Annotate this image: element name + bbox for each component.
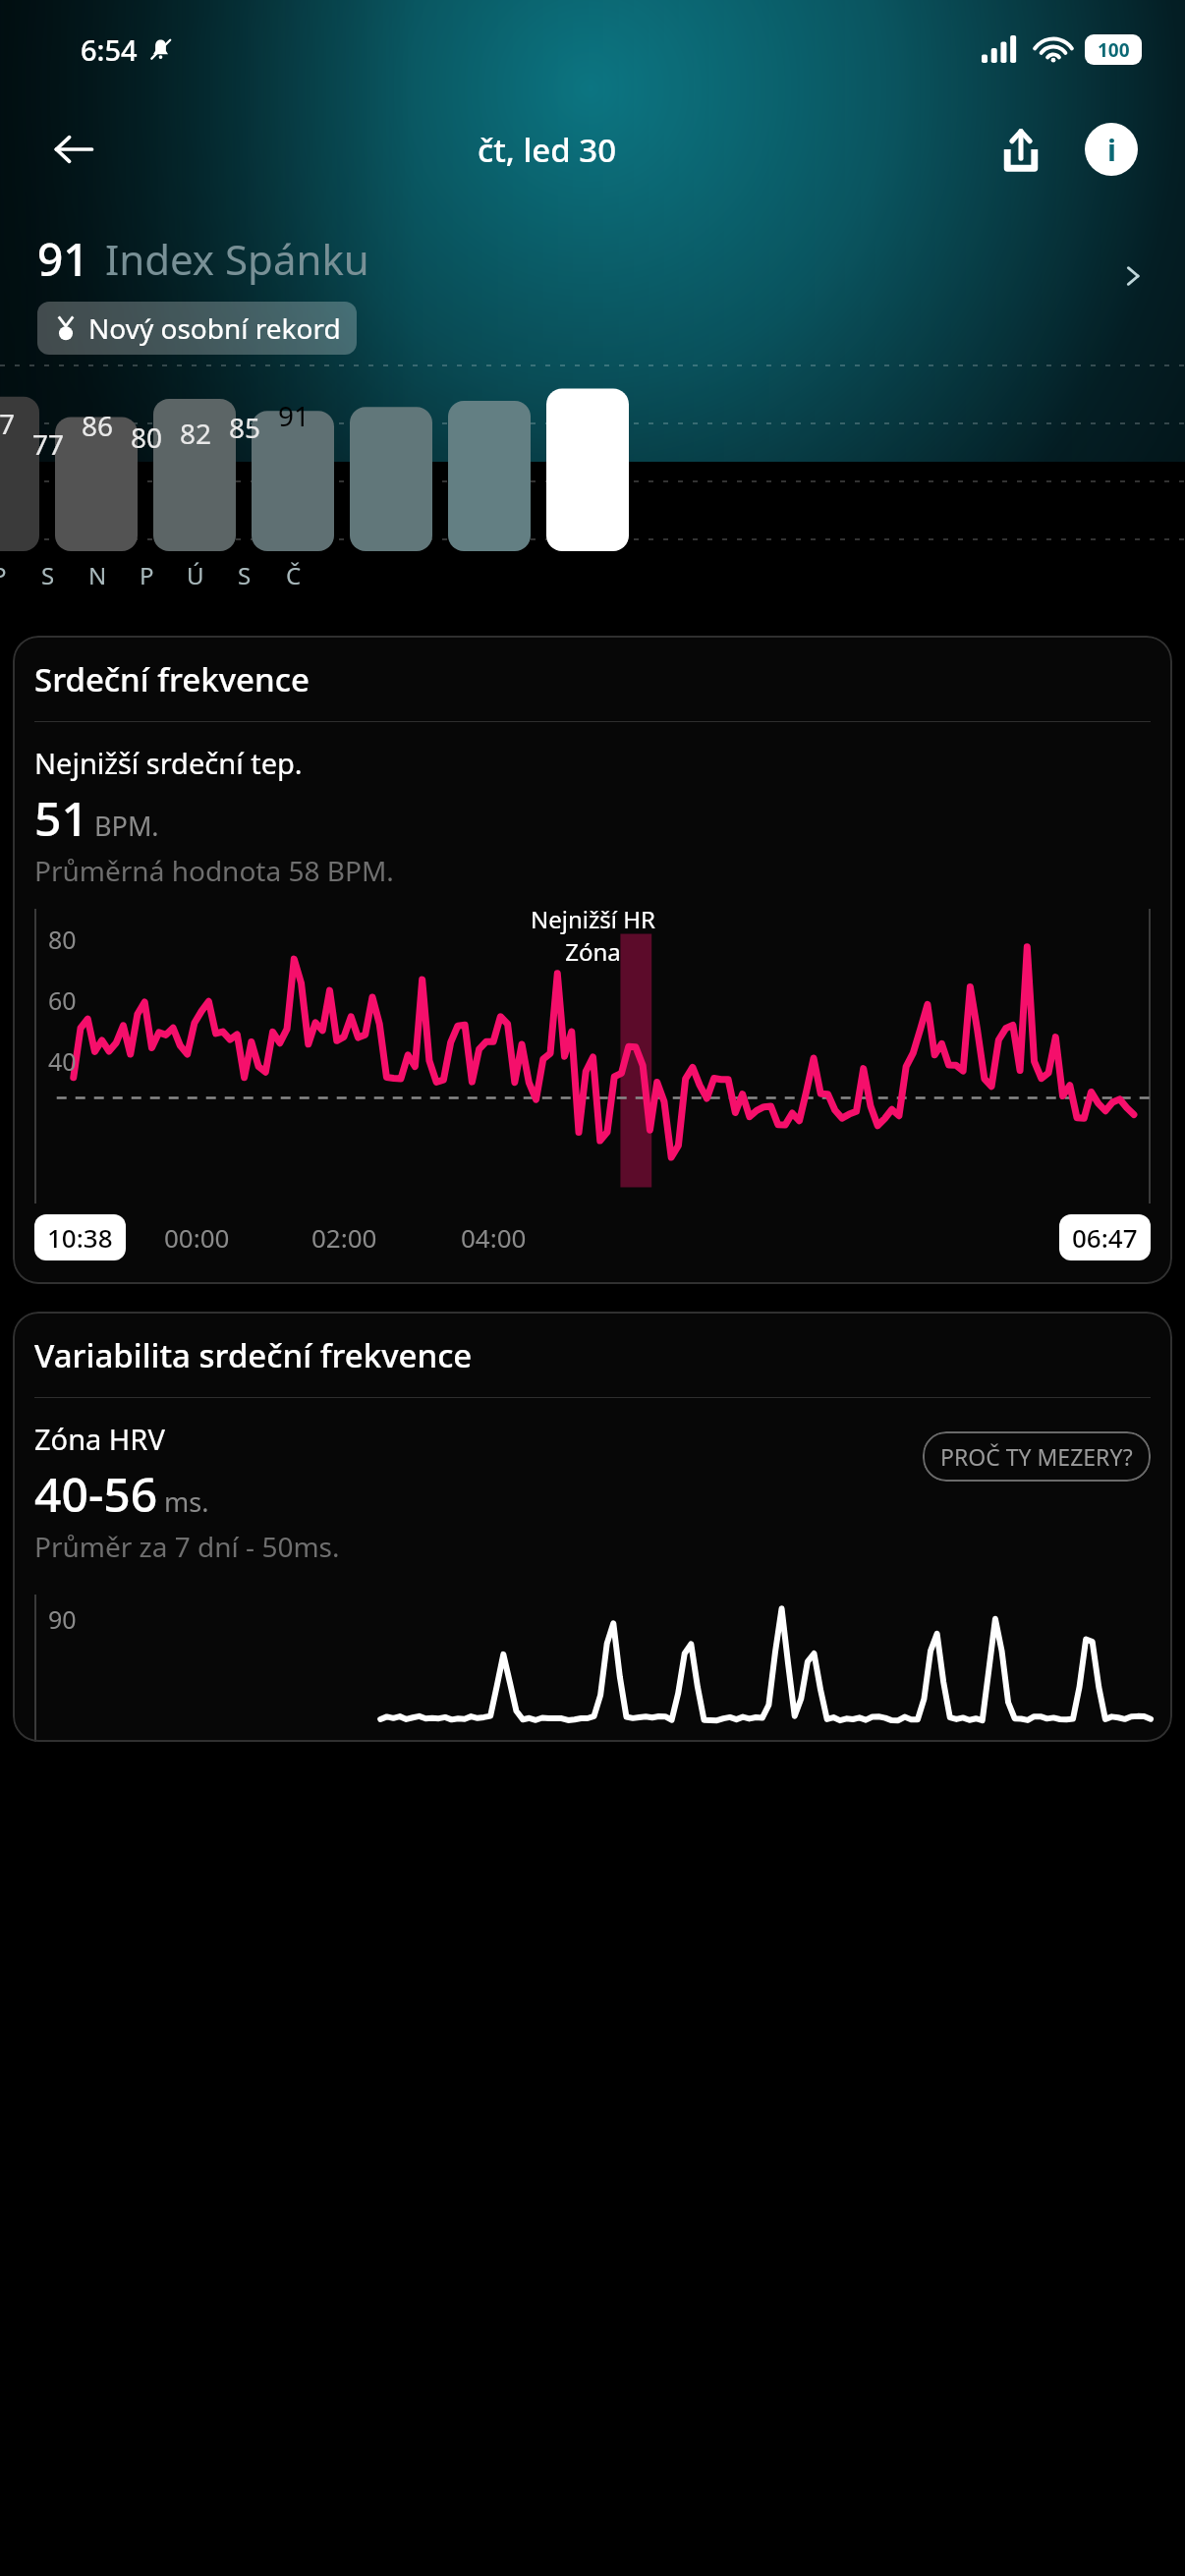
staticText: 80	[131, 419, 163, 456]
staticText: Srdeční frekvence	[34, 657, 310, 701]
staticText: S	[238, 559, 252, 591]
staticText: 60	[48, 983, 77, 1017]
staticText: P	[140, 559, 154, 591]
staticText: Ú	[187, 559, 204, 591]
staticText: 82	[180, 415, 212, 452]
staticText: čt, led 30	[478, 128, 617, 172]
staticText: 100	[1098, 37, 1130, 63]
staticText: 06:47	[1072, 1220, 1138, 1255]
button[interactable]: Back	[37, 113, 110, 186]
staticText: Index Spánku	[105, 231, 369, 287]
staticText: P	[0, 559, 7, 591]
staticText: 04:00	[461, 1220, 527, 1255]
button[interactable]: Srdeční frekvence	[13, 636, 1172, 1284]
staticText: PROČ TY MEZERY?	[940, 1441, 1133, 1472]
button[interactable]: Info	[1075, 113, 1148, 186]
staticText: Průměr za 7 dní - 50ms.	[34, 1528, 340, 1565]
staticText: Průměrná hodnota 58 BPM.	[34, 852, 394, 889]
button[interactable]: Variabilita srdeční frekvence	[13, 1312, 1172, 1742]
staticText: N	[88, 559, 107, 591]
staticText: Zóna HRV	[34, 1420, 165, 1458]
staticText: Nejnižší srdeční tep.	[34, 744, 303, 782]
staticText: 91	[37, 228, 89, 290]
staticText: i	[1107, 130, 1116, 170]
staticText: 40-56	[34, 1462, 158, 1526]
staticText: S	[41, 559, 55, 591]
staticText: 77	[32, 425, 65, 463]
staticText: 80	[48, 923, 77, 956]
staticText: 86	[82, 407, 114, 444]
staticText: 90	[48, 1602, 77, 1636]
staticText: 87	[0, 405, 16, 442]
button[interactable]: 91	[0, 228, 1185, 355]
staticText: Zóna	[565, 935, 621, 968]
staticText: Nejnižší HR	[531, 903, 655, 935]
button[interactable]: Share	[985, 113, 1057, 186]
staticText: 85	[229, 409, 261, 446]
staticText: ms.	[164, 1484, 209, 1520]
staticText: 10:38	[47, 1220, 113, 1255]
staticText: 00:00	[164, 1220, 230, 1255]
staticText: 40	[48, 1044, 77, 1078]
staticText: Variabilita srdeční frekvence	[34, 1333, 473, 1377]
staticText: 02:00	[311, 1220, 377, 1255]
staticText: 91	[278, 397, 310, 434]
staticText: Nový osobní rekord	[88, 309, 341, 347]
button[interactable]: PROČ TY MEZERY?	[923, 1431, 1151, 1482]
staticText: 51	[34, 786, 88, 850]
staticText: BPM.	[94, 808, 159, 844]
staticText: 6:54	[81, 30, 138, 69]
staticText: Č	[286, 559, 302, 591]
